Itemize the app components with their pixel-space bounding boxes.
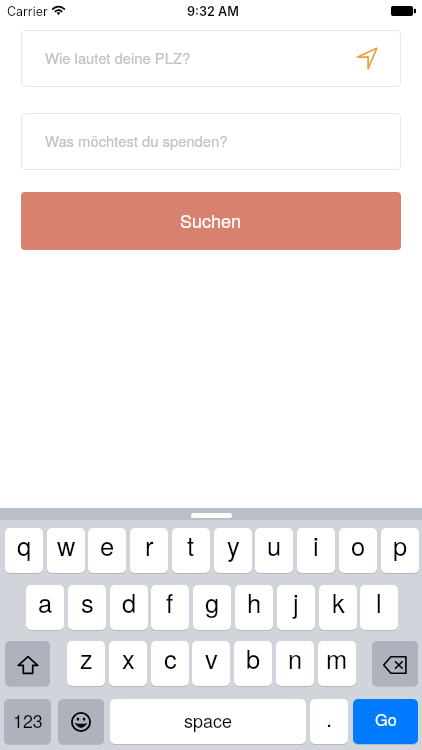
staticText: w bbox=[57, 528, 76, 564]
staticText: c bbox=[164, 641, 177, 677]
staticText: j bbox=[293, 585, 299, 621]
button[interactable]: m bbox=[318, 641, 356, 687]
staticText: o bbox=[351, 528, 366, 564]
staticText: z bbox=[80, 641, 93, 677]
staticText: 9:32 AM bbox=[187, 4, 239, 19]
staticText: n bbox=[288, 641, 303, 677]
staticText: m bbox=[326, 641, 348, 677]
other: Rücktaste bbox=[383, 656, 407, 674]
button[interactable]: d bbox=[110, 585, 148, 631]
button[interactable]: w bbox=[47, 528, 85, 574]
button[interactable]: Umschalttaste bbox=[5, 641, 50, 687]
staticText: space bbox=[184, 707, 233, 733]
staticText: q bbox=[17, 528, 32, 564]
staticText: Go bbox=[375, 707, 397, 730]
staticText: Was möchtest du spenden? bbox=[45, 130, 228, 151]
button[interactable]: e bbox=[88, 528, 126, 574]
button[interactable]: f bbox=[151, 585, 189, 631]
other: Umschalttaste bbox=[18, 656, 38, 674]
button[interactable]: space bbox=[110, 699, 306, 745]
button[interactable]: . bbox=[310, 699, 348, 745]
staticText: h bbox=[247, 585, 262, 621]
staticText: g bbox=[205, 585, 220, 621]
staticText: r bbox=[145, 528, 154, 564]
staticText: u bbox=[267, 528, 282, 564]
button[interactable]: Wie lautet deine PLZ? bbox=[21, 30, 401, 87]
staticText: a bbox=[38, 585, 53, 621]
staticText: f bbox=[166, 585, 174, 621]
staticText: . bbox=[326, 702, 333, 734]
other: Aktuellen Standort verwenden bbox=[357, 48, 377, 69]
staticText: x bbox=[122, 641, 135, 677]
button[interactable]: g bbox=[193, 585, 231, 631]
button[interactable]: 123 bbox=[4, 699, 51, 745]
staticText: i bbox=[313, 528, 319, 564]
button[interactable]: o bbox=[339, 528, 377, 574]
button[interactable]: c bbox=[151, 641, 189, 687]
button[interactable]: j bbox=[277, 585, 315, 631]
button[interactable]: y bbox=[214, 528, 252, 574]
button[interactable]: n bbox=[276, 641, 314, 687]
button[interactable]: a bbox=[26, 585, 64, 631]
staticText: p bbox=[393, 528, 408, 564]
staticText: y bbox=[227, 528, 240, 564]
button[interactable]: u bbox=[255, 528, 293, 574]
button[interactable]: Suchen bbox=[21, 192, 401, 250]
staticText: t bbox=[187, 528, 195, 564]
button[interactable]: z bbox=[67, 641, 105, 687]
staticText: e bbox=[100, 528, 115, 564]
staticText: k bbox=[332, 585, 345, 621]
staticText: Wie lautet deine PLZ? bbox=[45, 47, 191, 68]
button[interactable]: h bbox=[235, 585, 273, 631]
button[interactable]: x bbox=[109, 641, 147, 687]
button[interactable]: Go bbox=[353, 699, 418, 745]
button[interactable]: l bbox=[360, 585, 398, 631]
button[interactable]: s bbox=[68, 585, 106, 631]
staticText: d bbox=[122, 585, 137, 621]
other: Emoji bbox=[71, 712, 91, 732]
staticText: l bbox=[376, 585, 382, 621]
staticText: Carrier bbox=[7, 4, 48, 19]
button[interactable]: i bbox=[297, 528, 335, 574]
button[interactable]: Was möchtest du spenden? bbox=[21, 113, 401, 170]
staticText: Suchen bbox=[180, 207, 242, 233]
button[interactable]: Emoji bbox=[58, 699, 104, 745]
button[interactable]: q bbox=[5, 528, 43, 574]
button[interactable]: k bbox=[319, 585, 357, 631]
button[interactable]: b bbox=[234, 641, 272, 687]
staticText: v bbox=[205, 641, 218, 677]
staticText: 123 bbox=[13, 708, 43, 733]
button[interactable]: r bbox=[130, 528, 168, 574]
button[interactable]: t bbox=[172, 528, 210, 574]
button[interactable]: v bbox=[192, 641, 230, 687]
button[interactable]: Rücktaste bbox=[372, 641, 418, 687]
staticText: s bbox=[81, 585, 94, 621]
staticText: b bbox=[246, 641, 261, 677]
button[interactable]: p bbox=[381, 528, 419, 574]
